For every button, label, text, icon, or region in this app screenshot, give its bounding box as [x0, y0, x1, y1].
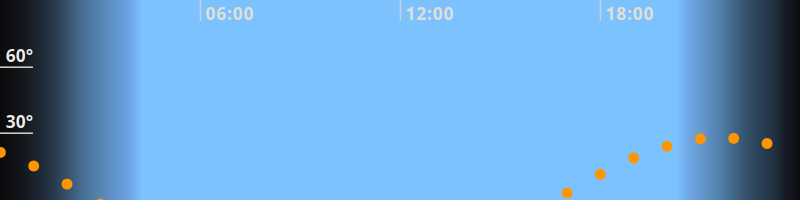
staticText: 30°: [6, 110, 33, 133]
staticText: 60°: [6, 44, 33, 67]
staticText: 18:00: [605, 2, 654, 25]
staticText: 06:00: [205, 2, 254, 25]
staticText: 12:00: [405, 2, 454, 25]
